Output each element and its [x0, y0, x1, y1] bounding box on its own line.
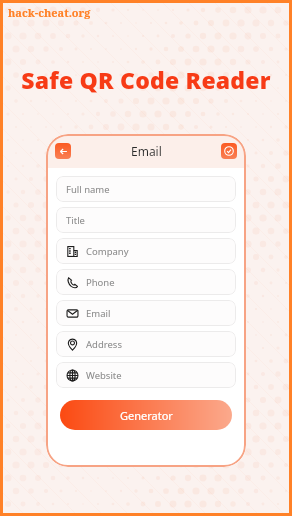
- button[interactable]: Title: [56, 207, 236, 233]
- button[interactable]: Full name: [56, 176, 236, 202]
- staticText: Generator: [120, 408, 173, 423]
- button[interactable]: Phone: [56, 269, 236, 295]
- staticText: Phone: [86, 276, 115, 289]
- button[interactable]: Company: [56, 238, 236, 264]
- button[interactable]: Back: [55, 143, 71, 159]
- staticText: hack-cheat.org: [8, 5, 91, 20]
- staticText: Safe QR Code Reader: [21, 64, 271, 95]
- staticText: Company: [86, 245, 129, 258]
- staticText: Full name: [66, 183, 110, 196]
- staticText: Website: [86, 369, 122, 382]
- staticText: Email: [131, 143, 162, 159]
- staticText: Address: [86, 338, 122, 351]
- button[interactable]: Confirm: [221, 143, 237, 159]
- button[interactable]: Generator: [60, 400, 232, 430]
- button[interactable]: Address: [56, 331, 236, 357]
- button[interactable]: Email: [56, 300, 236, 326]
- staticText: Title: [66, 214, 85, 227]
- staticText: Email: [86, 307, 111, 320]
- button[interactable]: Website: [56, 362, 236, 388]
